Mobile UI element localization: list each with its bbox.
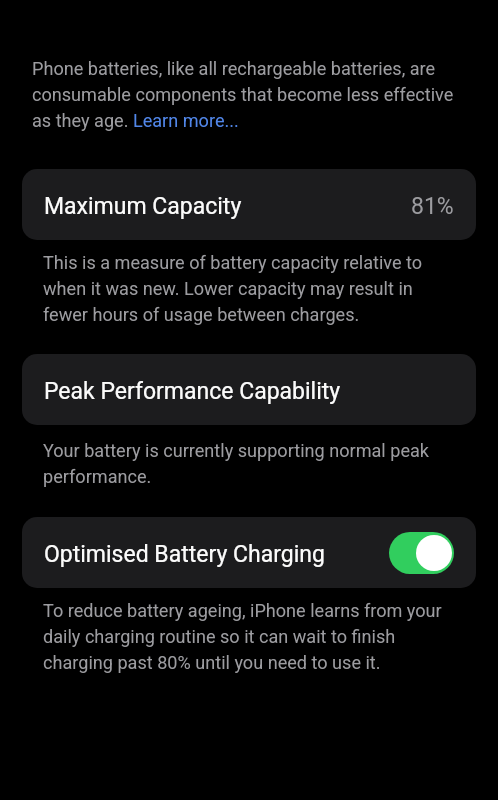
staticText: Optimised Battery Charging: [44, 541, 325, 568]
staticText: To reduce battery ageing, iPhone learns …: [43, 600, 458, 673]
button[interactable]: Maximum Capacity: [22, 169, 476, 240]
staticText: 81%: [411, 193, 454, 220]
staticText: Phone batteries, like all rechargeable b…: [32, 58, 468, 131]
staticText: This is a measure of battery capacity re…: [43, 252, 440, 325]
staticText: Your battery is currently supporting nor…: [43, 440, 440, 487]
button[interactable]: Peak Performance Capability: [22, 354, 476, 425]
button[interactable]: Optimised Battery Charging, on: [389, 532, 454, 574]
staticText: Peak Performance Capability: [44, 378, 341, 405]
staticText: Maximum Capacity: [44, 193, 242, 220]
button[interactable]: Optimised Battery Charging: [22, 517, 476, 588]
